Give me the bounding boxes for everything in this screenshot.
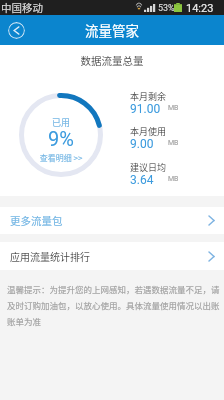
staticText: 数据流量总量 xyxy=(0,53,224,68)
staticText: 9.00 xyxy=(130,137,154,151)
staticText: 14:23 xyxy=(186,2,214,15)
staticText: 本月使用 xyxy=(130,125,167,138)
staticText: MB xyxy=(168,175,179,183)
staticText: 53% xyxy=(158,3,175,14)
staticText: 已用 xyxy=(19,116,103,129)
staticText: 应用流量统计排行 xyxy=(10,249,90,263)
button[interactable]: 更多流量包 xyxy=(0,207,224,234)
staticText: 建议日均 xyxy=(130,161,167,174)
button[interactable]: 应用流量统计排行 xyxy=(0,242,224,270)
staticText: MB xyxy=(168,104,179,112)
staticText: MB xyxy=(168,139,179,147)
staticText: 温馨提示：为提升您的上网感知，若遇数据流量不足，请及时订购加油包，以放心使用。具… xyxy=(7,283,220,328)
button[interactable]: 查看明细 >> xyxy=(19,152,103,164)
staticText: 9% xyxy=(19,127,103,150)
staticText: 3.64 xyxy=(130,173,154,187)
staticText: 查看明细 >> xyxy=(19,152,103,164)
staticText: 更多流量包 xyxy=(10,213,63,228)
staticText: 91.00 xyxy=(130,102,161,116)
staticText: 流量管家 xyxy=(85,20,139,40)
staticText: 中国移动 xyxy=(1,0,43,15)
button[interactable]: Back xyxy=(8,22,25,39)
staticText: 本月剩余 xyxy=(130,90,167,103)
